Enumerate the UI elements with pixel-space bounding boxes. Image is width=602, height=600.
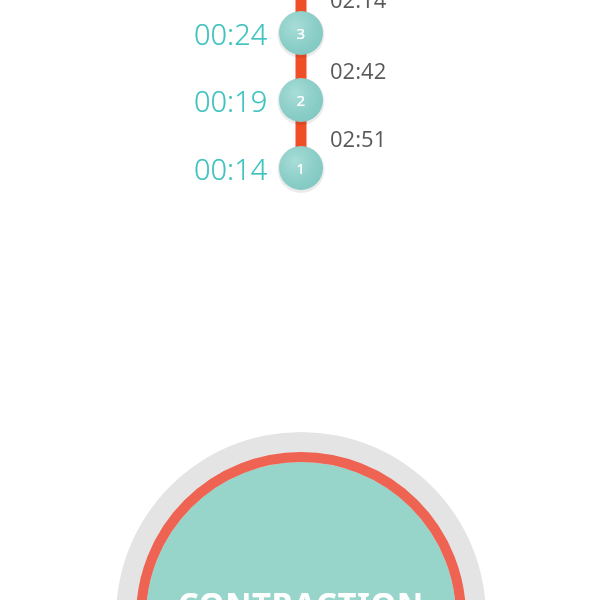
button[interactable]: Start contraction — [0, 0, 602, 600]
button[interactable] — [0, 0, 602, 600]
